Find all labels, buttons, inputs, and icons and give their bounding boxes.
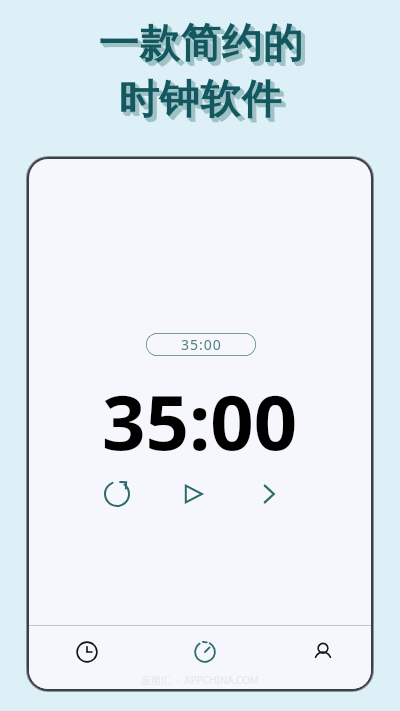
staticText: 35:00 xyxy=(181,335,222,354)
staticText: 时钟软件 xyxy=(121,77,285,127)
staticText: 一款简约的 xyxy=(98,18,303,68)
staticText: 时钟软件 xyxy=(120,76,284,126)
staticText: 一款简约的 xyxy=(101,21,306,71)
staticText: 应用汇 · APPCHINA.COM xyxy=(29,673,371,687)
button[interactable]: Profile xyxy=(303,634,343,670)
button[interactable]: Clock xyxy=(67,634,107,670)
button[interactable]: Start xyxy=(173,474,213,514)
button[interactable]: Next xyxy=(249,474,289,514)
staticText: 一款简约的 xyxy=(102,22,307,72)
staticText: 一款简约的 xyxy=(100,20,305,70)
button[interactable]: Reset xyxy=(97,474,137,514)
button[interactable]: Timer xyxy=(185,634,225,670)
staticText: 时钟软件 xyxy=(118,74,282,124)
button[interactable]: 35:00 xyxy=(146,333,256,356)
staticText: 时钟软件 xyxy=(122,78,286,128)
staticText: 35:00 xyxy=(102,369,298,473)
